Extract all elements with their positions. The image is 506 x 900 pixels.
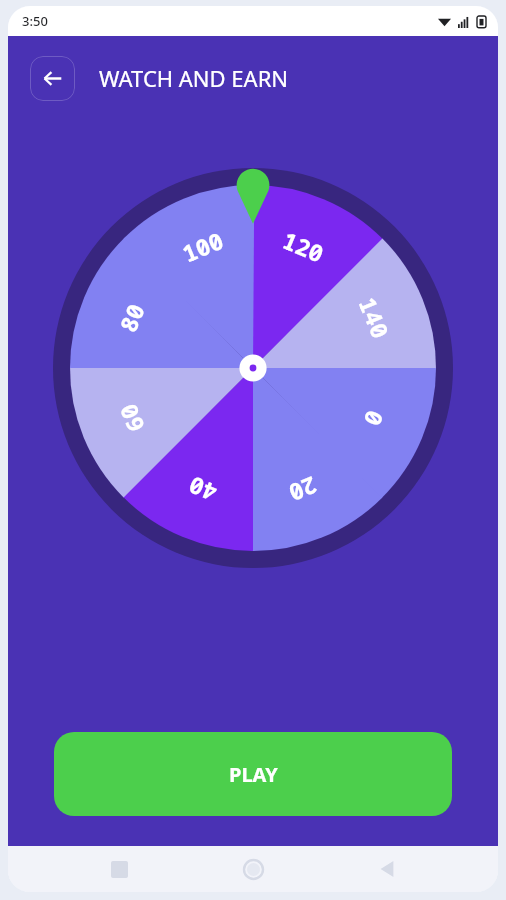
staticText: WATCH AND EARN [99,63,289,93]
staticText: PLAY [229,761,278,788]
button[interactable]: Back [364,846,410,892]
button[interactable]: PLAY [54,732,452,816]
staticText: 3:50 [22,12,48,30]
button[interactable]: Home [230,846,276,892]
button[interactable]: Back [30,56,75,101]
button[interactable]: Recent apps [96,846,142,892]
